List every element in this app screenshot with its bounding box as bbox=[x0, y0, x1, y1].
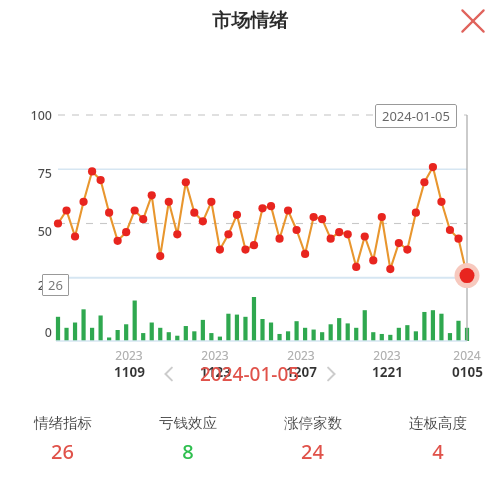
staticText: 26 bbox=[48, 276, 63, 294]
staticText: 1207 bbox=[286, 363, 317, 381]
staticText: 50 bbox=[37, 223, 52, 240]
staticText: 情绪指标 bbox=[34, 414, 92, 432]
staticText: 涨停家数 bbox=[284, 414, 342, 432]
staticText: 2023 bbox=[373, 347, 401, 363]
button[interactable]: 涨停家数 bbox=[250, 412, 375, 467]
staticText: 24 bbox=[301, 438, 324, 465]
button[interactable]: Close bbox=[452, 0, 494, 42]
staticText: 100 bbox=[30, 107, 52, 124]
staticText: 2024-01-05 bbox=[382, 107, 450, 125]
staticText: 75 bbox=[37, 165, 52, 182]
staticText: 4 bbox=[432, 438, 444, 465]
staticText: 市场情绪 bbox=[212, 9, 288, 33]
staticText: 2023 bbox=[201, 347, 229, 363]
button[interactable]: 情绪指标 bbox=[0, 412, 125, 467]
staticText: 1123 bbox=[200, 363, 231, 381]
button[interactable]: 亏钱效应 bbox=[125, 412, 250, 467]
staticText: 1221 bbox=[372, 363, 403, 381]
staticText: 2023 bbox=[287, 347, 315, 363]
button[interactable]: 连板高度 bbox=[375, 412, 500, 467]
staticText: 亏钱效应 bbox=[159, 414, 217, 432]
staticText: 8 bbox=[182, 438, 194, 465]
staticText: 2023 bbox=[115, 347, 143, 363]
staticText: 连板高度 bbox=[409, 414, 467, 432]
staticText: 2024-01-05 bbox=[200, 361, 300, 387]
staticText: 26 bbox=[51, 438, 74, 465]
staticText: 25 bbox=[37, 277, 52, 294]
staticText: 0105 bbox=[452, 363, 483, 381]
button[interactable]: Next day bbox=[312, 355, 350, 393]
staticText: 0 bbox=[44, 324, 52, 341]
staticText: 1109 bbox=[114, 363, 145, 381]
button[interactable]: Previous day bbox=[150, 355, 188, 393]
button[interactable]: 2024-01-05 bbox=[200, 361, 300, 387]
staticText: 2024 bbox=[453, 347, 481, 363]
